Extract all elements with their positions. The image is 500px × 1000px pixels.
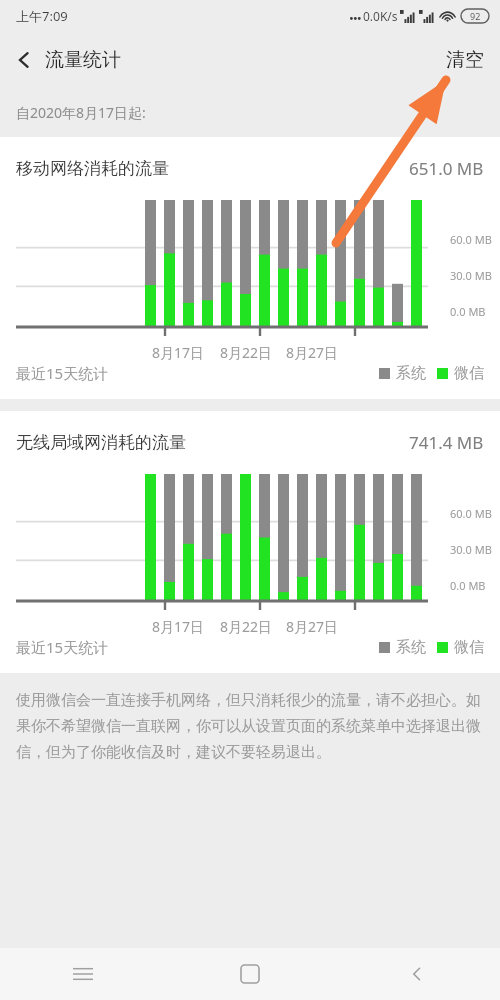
staticText: 自2020年8月17日起: — [16, 103, 146, 122]
staticText: 60.0 MB — [450, 506, 492, 521]
button[interactable]: 清空 — [430, 38, 500, 82]
staticText: 流量统计 — [45, 48, 121, 72]
button[interactable]: Back — [333, 948, 500, 1000]
staticText: 60.0 MB — [450, 232, 492, 247]
staticText: 系统 — [396, 364, 426, 383]
staticText: 30.0 MB — [450, 542, 492, 557]
staticText: 清空 — [446, 48, 484, 72]
staticText: 微信 — [454, 364, 484, 383]
button[interactable]: Home — [166, 948, 333, 1000]
button[interactable]: Recent apps — [0, 948, 166, 1000]
staticText: 8月22日 — [220, 617, 273, 636]
staticText: 无线局域网消耗的流量 — [16, 432, 186, 453]
staticText: 8月17日 — [152, 617, 205, 636]
staticText: 最近15天统计 — [16, 363, 109, 383]
staticText: 8月22日 — [220, 343, 273, 362]
staticText: 0.0K/s — [363, 8, 398, 24]
staticText: 0.0 MB — [450, 304, 486, 319]
staticText: 651.0 MB — [409, 157, 484, 180]
other: Back — [14, 50, 34, 70]
staticText: 8月17日 — [152, 343, 205, 362]
staticText: 8月27日 — [286, 617, 339, 636]
staticText: 上午7:09 — [16, 7, 68, 25]
staticText: 系统 — [396, 638, 426, 657]
staticText: 0.0 MB — [450, 578, 486, 593]
staticText: 使用微信会一直连接手机网络，但只消耗很少的流量，请不必担心。如果你不希望微信一直… — [16, 691, 484, 762]
staticText: 移动网络消耗的流量 — [16, 158, 169, 179]
staticText: 741.4 MB — [409, 431, 484, 454]
staticText: 8月27日 — [286, 343, 339, 362]
staticText: 30.0 MB — [450, 268, 492, 283]
staticText: 92 — [470, 10, 481, 22]
staticText: 最近15天统计 — [16, 637, 109, 657]
staticText: 微信 — [454, 638, 484, 657]
button[interactable]: Back — [0, 40, 133, 80]
